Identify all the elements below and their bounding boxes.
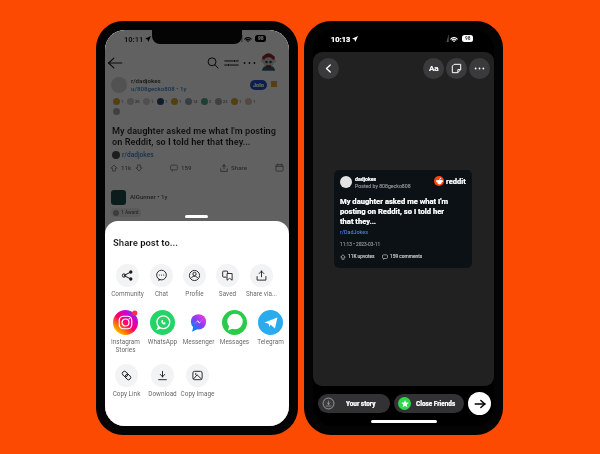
staticText: Aa	[429, 64, 439, 73]
button[interactable]: Back	[107, 55, 123, 71]
button[interactable]: Text style	[423, 58, 444, 79]
button[interactable]: Messenger	[179, 310, 218, 346]
staticText: Copy Link	[107, 390, 146, 398]
button[interactable]: Back	[318, 58, 339, 79]
staticText: 1	[179, 99, 182, 104]
staticText: My daughter asked me what I'm posting on…	[112, 125, 288, 147]
button[interactable]: Community	[108, 264, 147, 298]
staticText: r/dadjokes	[131, 77, 161, 84]
staticText: r/DadJokes	[340, 229, 368, 235]
staticText: Profile	[175, 290, 214, 298]
staticText: 1	[151, 99, 154, 104]
staticText: 14	[193, 99, 198, 104]
staticText: 98	[465, 36, 471, 42]
button[interactable]: Stickers	[446, 58, 467, 79]
staticText: 98	[258, 36, 264, 42]
staticText: My daughter asked me what I'm posting on…	[340, 197, 449, 225]
staticText: 10:11	[124, 35, 144, 44]
button[interactable]: Download	[143, 364, 182, 398]
staticText: 23	[223, 99, 228, 104]
staticText: 11k	[121, 164, 132, 171]
staticText: Share via...	[242, 290, 281, 298]
button[interactable]: More options	[469, 58, 490, 79]
staticText: reddit	[446, 177, 466, 186]
staticText: AlGunner • 1y	[130, 193, 168, 200]
button[interactable]: Copy Link	[107, 364, 146, 398]
staticText: Messages	[215, 338, 254, 346]
staticText: 11K upvotes	[348, 254, 375, 260]
button[interactable]: Filter	[224, 57, 239, 69]
button[interactable]: WhatsApp	[143, 310, 182, 346]
staticText: 10:13	[331, 35, 351, 44]
button[interactable]: Share via...	[242, 264, 281, 298]
button[interactable]: Instagram Stories	[106, 310, 145, 354]
button[interactable]: Copy Image	[178, 364, 217, 398]
staticText: 1	[239, 99, 242, 104]
button[interactable]: Messages	[215, 310, 254, 346]
staticText: u/808gecko808 • 1y	[131, 85, 187, 92]
button[interactable]: Search	[207, 57, 219, 69]
button[interactable]: Close Friends	[394, 394, 464, 413]
staticText: Copy Image	[178, 390, 217, 398]
staticText: 1	[121, 99, 124, 104]
staticText: 1	[165, 99, 168, 104]
button[interactable]: Profile	[175, 264, 214, 298]
staticText: Join	[253, 82, 264, 88]
staticText: 159 comments	[390, 254, 423, 260]
staticText: WhatsApp	[143, 338, 182, 346]
button[interactable]: Join	[250, 80, 267, 90]
staticText: Close Friends	[416, 400, 456, 408]
staticText: Your story	[346, 400, 376, 408]
staticText: Chat	[142, 290, 181, 298]
staticText: Telegram	[251, 338, 289, 346]
staticText: dadjokes	[355, 176, 377, 182]
staticText: Community	[108, 290, 147, 298]
button[interactable]: More options	[243, 57, 256, 69]
staticText: Messenger	[179, 338, 218, 346]
staticText: 2	[209, 99, 212, 104]
button[interactable]: Chat	[142, 264, 181, 298]
staticText: 1 Award	[121, 210, 139, 216]
staticText: r/dadjokes	[122, 151, 154, 159]
staticText: 20	[135, 99, 140, 104]
button[interactable]: Send	[468, 392, 491, 415]
staticText: Instagram Stories	[106, 338, 145, 354]
button[interactable]: Telegram	[251, 310, 289, 346]
staticText: Share post to...	[113, 237, 179, 248]
staticText: Share	[231, 164, 247, 171]
staticText: Posted by 808gecko808	[355, 183, 411, 189]
staticText: 159	[181, 164, 192, 171]
staticText: Download	[143, 390, 182, 398]
button[interactable]: Your story	[318, 394, 390, 413]
staticText: 11:13 • 2023-03-11	[340, 242, 381, 248]
button[interactable]: Saved	[208, 264, 247, 298]
staticText: 1	[253, 99, 256, 104]
button[interactable]: Profile	[260, 53, 277, 71]
staticText: Saved	[208, 290, 247, 298]
